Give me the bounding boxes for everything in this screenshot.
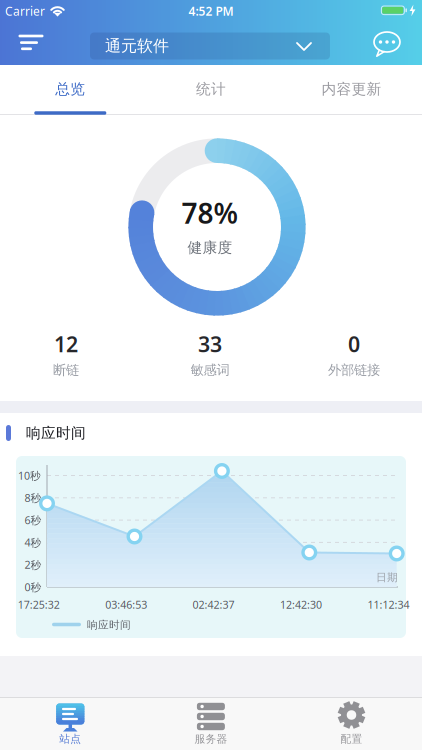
staticText: 响应时间: [26, 424, 86, 442]
staticText: 服务器: [194, 732, 227, 745]
button[interactable]: 站点: [0, 698, 141, 750]
staticText: 78%: [181, 194, 238, 232]
button[interactable]: 服务器: [141, 698, 281, 750]
staticText: 统计: [196, 80, 226, 98]
staticText: 17:25:32: [18, 597, 60, 612]
staticText: 内容更新: [321, 80, 381, 98]
button[interactable]: Messages: [373, 31, 403, 59]
staticText: 外部链接: [328, 362, 380, 378]
staticText: 健康度: [187, 238, 232, 256]
button[interactable]: 配置: [281, 698, 422, 750]
staticText: 0秒: [24, 580, 41, 594]
staticText: 0: [348, 330, 360, 358]
staticText: 敏感词: [190, 362, 229, 378]
staticText: 2秒: [24, 558, 41, 572]
staticText: Carrier: [5, 3, 45, 19]
staticText: 33: [198, 330, 222, 358]
button[interactable]: Menu: [0, 22, 64, 65]
staticText: 配置: [340, 732, 362, 745]
button[interactable]: 通元软件: [90, 32, 330, 59]
staticText: 通元软件: [105, 36, 169, 56]
staticText: 断链: [53, 362, 79, 378]
button[interactable]: 统计: [141, 65, 281, 115]
staticText: 6秒: [24, 513, 41, 527]
staticText: 8秒: [24, 491, 41, 505]
staticText: 02:42:37: [193, 597, 235, 612]
staticText: 03:46:53: [105, 597, 147, 612]
staticText: 10秒: [18, 468, 41, 483]
button[interactable]: 内容更新: [281, 65, 422, 115]
staticText: 4:52 PM: [188, 3, 233, 19]
staticText: 日期: [376, 571, 398, 584]
staticText: 11:12:34: [367, 597, 409, 612]
staticText: 响应时间: [87, 618, 131, 631]
button[interactable]: 总览: [0, 65, 141, 115]
staticText: 12:42:30: [280, 597, 322, 612]
staticText: 12: [54, 330, 78, 358]
staticText: 站点: [59, 732, 81, 745]
staticText: 总览: [55, 80, 85, 98]
staticText: 4秒: [24, 535, 41, 549]
